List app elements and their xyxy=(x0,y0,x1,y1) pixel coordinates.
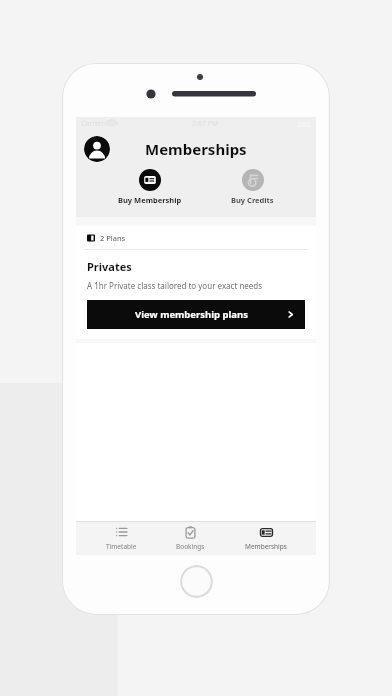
staticText: A 1hr Private class tailored to your exa… xyxy=(87,280,263,291)
staticText: Buy Credits xyxy=(231,195,274,205)
button[interactable]: Memberships xyxy=(235,524,297,553)
staticText: Carrier xyxy=(81,119,105,129)
staticText: Buy Membership xyxy=(118,195,182,205)
staticText: View membership plans xyxy=(97,308,286,321)
button[interactable]: Bookings xyxy=(166,524,215,553)
staticText: Memberships xyxy=(145,139,247,159)
button[interactable]: Timetable xyxy=(96,524,147,553)
button[interactable]: Buy Credits xyxy=(223,167,282,207)
button[interactable]: Profile xyxy=(84,136,110,162)
button[interactable]: Buy Membership xyxy=(110,167,190,207)
staticText: 2:07 PM xyxy=(192,119,219,129)
staticText: Memberships xyxy=(245,542,287,551)
staticText: Privates xyxy=(87,259,132,274)
button[interactable]: View membership plans xyxy=(87,300,305,329)
button[interactable]: Home xyxy=(180,565,213,598)
staticText: Timetable xyxy=(106,542,137,551)
staticText: Bookings xyxy=(176,542,205,551)
staticText: 2 Plans xyxy=(100,233,126,243)
